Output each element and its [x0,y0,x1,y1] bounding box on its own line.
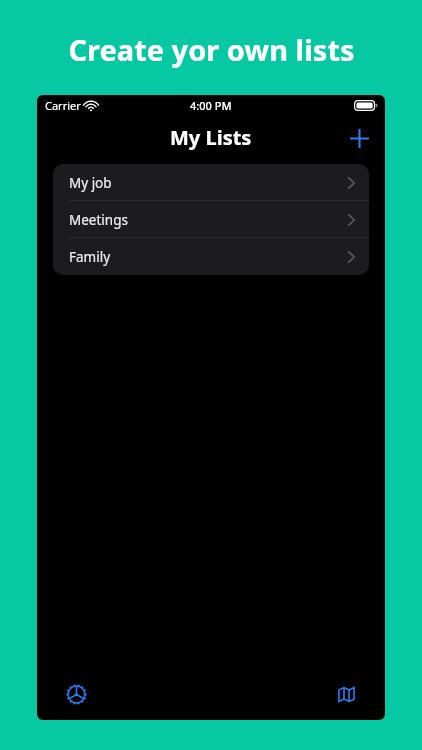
staticText: Meetings [69,211,128,229]
staticText: 4:00 PM [190,98,232,113]
button[interactable]: Map [329,677,363,711]
staticText: Family [69,248,111,266]
button[interactable]: Settings [59,677,93,711]
button[interactable]: My job [53,164,369,201]
button[interactable]: Meetings [53,201,369,238]
staticText: My job [69,174,112,192]
staticText: Carrier [45,98,81,113]
staticText: Create yor own lists [68,30,355,69]
button[interactable]: Family [53,238,369,275]
staticText: My Lists [170,124,252,151]
button[interactable]: Add list [344,123,374,153]
